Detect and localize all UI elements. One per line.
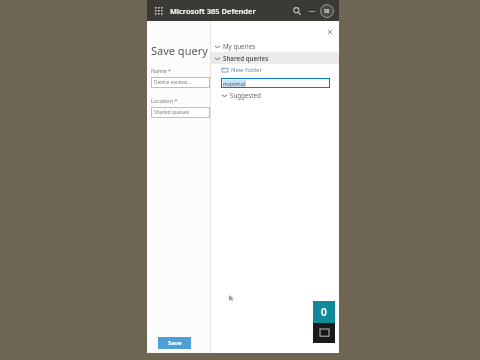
button[interactable]: Shared queries bbox=[211, 52, 339, 64]
staticText: SR bbox=[324, 8, 330, 14]
staticText: New folder bbox=[231, 66, 262, 74]
button[interactable]: maximal bbox=[221, 78, 330, 88]
staticText: Device excessi... bbox=[154, 79, 192, 86]
button[interactable]: Suggested bbox=[211, 89, 339, 101]
staticText: 0 bbox=[321, 305, 327, 319]
button[interactable]: Search bbox=[290, 4, 304, 18]
button[interactable]: Save bbox=[158, 337, 191, 349]
button[interactable]: Feedback bbox=[313, 323, 335, 343]
staticText: maximal bbox=[223, 80, 246, 87]
button[interactable]: More bbox=[306, 5, 318, 17]
staticText: Shared queries bbox=[223, 54, 269, 62]
staticText: My queries bbox=[223, 42, 256, 50]
staticText: Microsoft 365 Defender bbox=[170, 6, 256, 16]
staticText: Save query bbox=[151, 43, 208, 58]
button[interactable]: Shared queues bbox=[151, 107, 210, 118]
button[interactable]: Account bbox=[320, 4, 334, 18]
button[interactable]: 0 bbox=[313, 301, 335, 323]
staticText: Location * bbox=[151, 97, 178, 104]
staticText: Shared queues bbox=[154, 109, 190, 116]
button[interactable]: App launcher bbox=[152, 4, 166, 18]
button[interactable]: New folder bbox=[211, 64, 339, 76]
staticText: Suggested bbox=[230, 91, 261, 99]
button[interactable]: Close bbox=[326, 28, 334, 36]
staticText: Save bbox=[168, 339, 182, 347]
button[interactable]: My queries bbox=[211, 40, 339, 52]
button[interactable]: Device excessi... bbox=[151, 77, 210, 88]
staticText: Name * bbox=[151, 67, 171, 74]
